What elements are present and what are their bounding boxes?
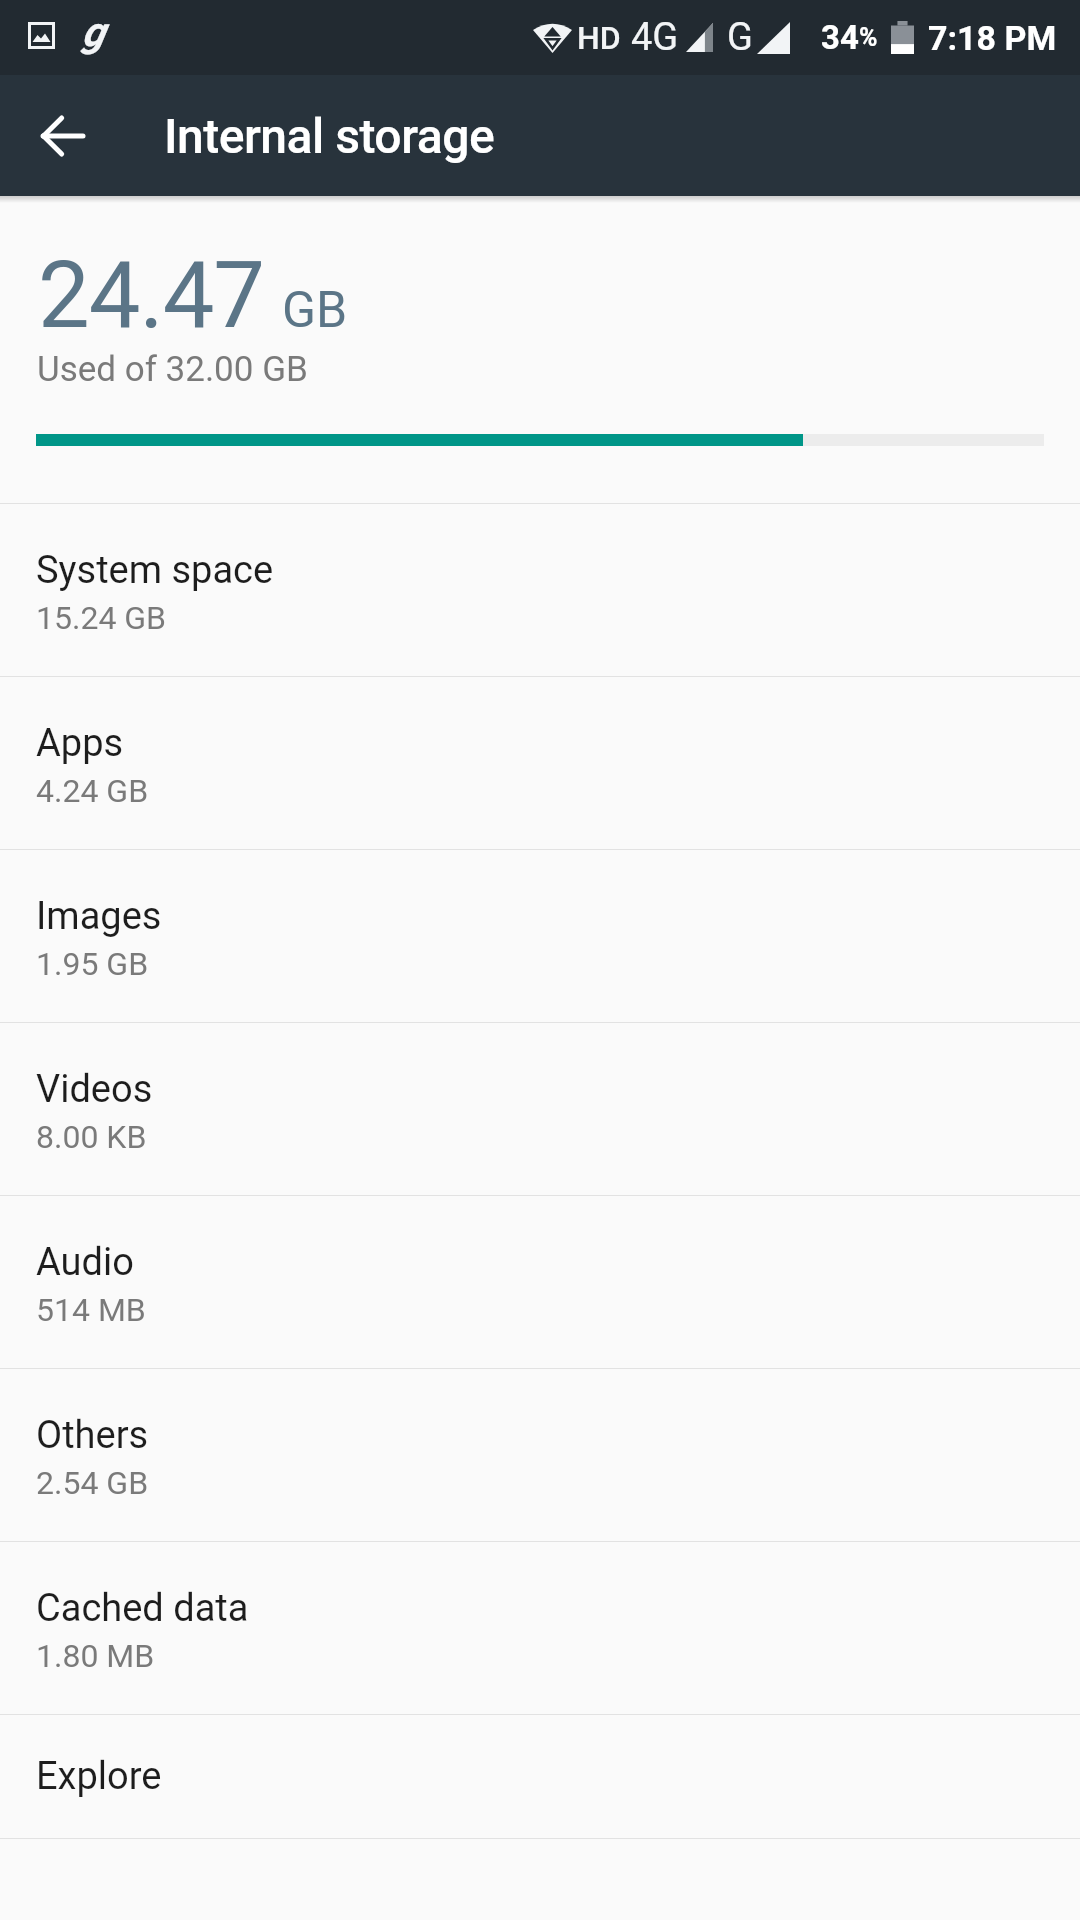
staticText: Images bbox=[36, 894, 162, 939]
button[interactable]: System space bbox=[0, 504, 1080, 676]
staticText: Videos bbox=[36, 1067, 153, 1112]
staticText: 1.95 GB bbox=[36, 945, 149, 983]
button[interactable] bbox=[30, 103, 96, 169]
staticText: g bbox=[82, 8, 105, 56]
staticText: System space bbox=[36, 548, 274, 593]
staticText: Used of 32.00 GB bbox=[37, 349, 308, 390]
button[interactable]: Audio bbox=[0, 1196, 1080, 1368]
button[interactable]: Cached data bbox=[0, 1542, 1080, 1714]
staticText: Explore bbox=[36, 1754, 162, 1799]
button[interactable]: Images bbox=[0, 850, 1080, 1022]
staticText: 34 bbox=[821, 18, 859, 57]
staticText: 514 MB bbox=[36, 1291, 146, 1329]
staticText: Others bbox=[36, 1413, 149, 1458]
button[interactable]: Others bbox=[0, 1369, 1080, 1541]
staticText: 7:18 PM bbox=[928, 18, 1057, 58]
staticText: Audio bbox=[36, 1240, 134, 1285]
staticText: 4.24 GB bbox=[36, 772, 149, 810]
staticText: 4G bbox=[631, 15, 679, 60]
staticText: % bbox=[859, 23, 878, 52]
staticText: Internal storage bbox=[164, 108, 495, 164]
staticText: 15.24 GB bbox=[36, 599, 167, 637]
staticText: Apps bbox=[36, 721, 124, 766]
staticText: GB bbox=[282, 281, 348, 340]
staticText: HD bbox=[577, 19, 621, 57]
staticText: 8.00 KB bbox=[36, 1118, 147, 1156]
staticText: 24.47 bbox=[38, 242, 265, 350]
staticText: 2.54 GB bbox=[36, 1464, 149, 1502]
button[interactable]: Apps bbox=[0, 677, 1080, 849]
staticText: 1.80 MB bbox=[36, 1637, 155, 1675]
button[interactable]: Videos bbox=[0, 1023, 1080, 1195]
staticText: Cached data bbox=[36, 1586, 249, 1631]
button[interactable]: Explore bbox=[0, 1715, 1080, 1838]
staticText: G bbox=[727, 15, 753, 60]
